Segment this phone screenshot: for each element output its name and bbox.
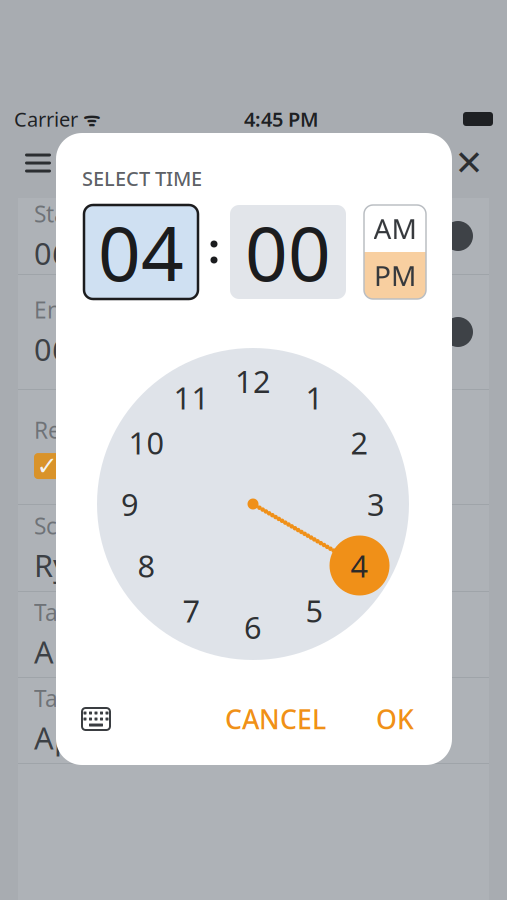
staticText: Ry [34,545,69,585]
staticText: 10 [128,422,164,463]
button[interactable]: Switch to text input [74,699,118,739]
staticText: 9 [121,484,139,524]
staticText: AM [373,210,416,247]
staticText: 4:45 PM [244,106,319,132]
staticText: 1 [305,377,323,418]
staticText: Ap [34,631,73,672]
staticText: Carrier [14,106,78,132]
button[interactable]: OK [368,698,422,740]
staticText: SELECT TIME [82,165,202,192]
staticText: 06 [268,233,304,273]
staticText: 4 [350,545,368,586]
button[interactable]: CANCEL [217,698,334,740]
staticText: 12 [235,361,271,401]
staticText: 00 [245,202,331,302]
staticText: ✓ [36,452,57,480]
staticText: ᯤ [78,107,100,131]
staticText: Edit Task [182,140,325,186]
button[interactable]: PM [364,252,426,299]
staticText: PM [374,257,416,294]
staticText: Start Time [268,199,377,229]
staticText: Sch [34,511,71,541]
button[interactable]: Menu [14,139,62,187]
staticText: 2 [350,422,368,463]
staticText: OK [376,701,414,737]
staticText: CANCEL [225,701,326,737]
staticText: 04 [98,202,184,302]
staticText: Rer [34,415,70,445]
staticText: End Date [34,295,132,325]
staticText: Tas [34,597,69,627]
staticText: 8 [137,545,155,586]
button[interactable]: Close [445,139,493,187]
staticText: ✕ [454,143,483,183]
staticText: 06 [268,329,304,369]
button[interactable]: AM [364,205,426,252]
staticText: Start Date [34,199,141,229]
staticText: End Time [268,295,368,325]
staticText: 06 [34,329,70,369]
staticText: 5 [305,590,323,631]
staticText: Ap [34,717,73,758]
staticText: 6 [244,607,262,647]
button[interactable]: 00 [230,205,346,299]
staticText: 3 [367,484,385,524]
button[interactable]: 04 [84,205,198,299]
staticText: Tas [34,683,69,713]
staticText: 06 [34,233,70,273]
staticText: 11 [173,377,209,418]
staticText: 7 [182,590,200,631]
